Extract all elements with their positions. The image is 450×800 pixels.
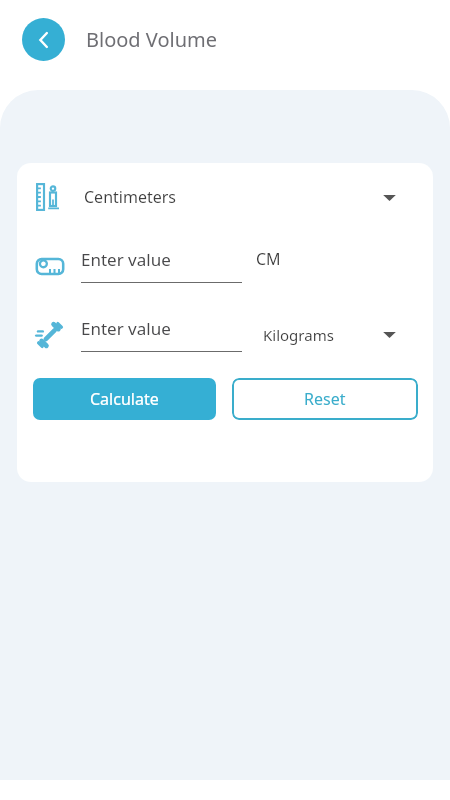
button[interactable]: Enter value (81, 317, 242, 352)
staticText: Enter value (81, 317, 171, 340)
button[interactable]: Kilograms (263, 325, 335, 345)
button[interactable]: Back (22, 18, 65, 61)
button[interactable]: Reset (232, 378, 418, 420)
staticText: Reset (304, 388, 346, 410)
staticText: Blood Volume (86, 26, 218, 53)
staticText: CM (256, 248, 281, 270)
staticText: Calculate (90, 388, 159, 410)
staticText: Enter value (81, 248, 171, 271)
staticText: Kilograms (263, 325, 334, 345)
button[interactable]: Enter value (81, 248, 242, 283)
staticText: Centimeters (84, 186, 176, 208)
button[interactable]: Calculate (33, 378, 216, 420)
button[interactable]: Centimeters (17, 163, 433, 231)
